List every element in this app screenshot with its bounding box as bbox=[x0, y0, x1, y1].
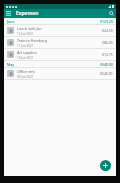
staticText: $12.75 bbox=[102, 52, 113, 57]
button[interactable]: Add expense bbox=[100, 160, 111, 171]
staticText: June bbox=[7, 19, 15, 24]
button[interactable]: Open navigation menu bbox=[4, 9, 13, 18]
staticText: Train to Hamburg bbox=[17, 38, 47, 43]
button[interactable]: Lunch with Jan bbox=[4, 25, 116, 36]
staticText: Office rent bbox=[17, 69, 35, 74]
button[interactable]: Search bbox=[107, 9, 116, 18]
staticText: Lunch with Jan bbox=[17, 26, 42, 31]
staticText: $24.50 bbox=[102, 28, 113, 33]
staticText: Expenses bbox=[16, 10, 39, 17]
staticText: $540.00 bbox=[100, 62, 113, 67]
staticText: $86.00 bbox=[102, 40, 113, 45]
staticText: 02 Jun 2021 bbox=[17, 75, 34, 79]
staticText: 11 Jun 2021 bbox=[17, 44, 34, 48]
staticText: May bbox=[7, 62, 15, 67]
staticText: $123.25 bbox=[100, 19, 113, 24]
staticText: Art supplies bbox=[17, 50, 37, 55]
staticText: $540.00 bbox=[100, 71, 113, 76]
button[interactable]: Art supplies bbox=[4, 49, 116, 60]
button[interactable]: Train to Hamburg bbox=[4, 37, 116, 48]
staticText: 10 Jun 2021 bbox=[17, 56, 34, 60]
staticText: 12 Jun 2021 bbox=[17, 32, 34, 36]
button[interactable]: Office rent bbox=[4, 68, 116, 79]
